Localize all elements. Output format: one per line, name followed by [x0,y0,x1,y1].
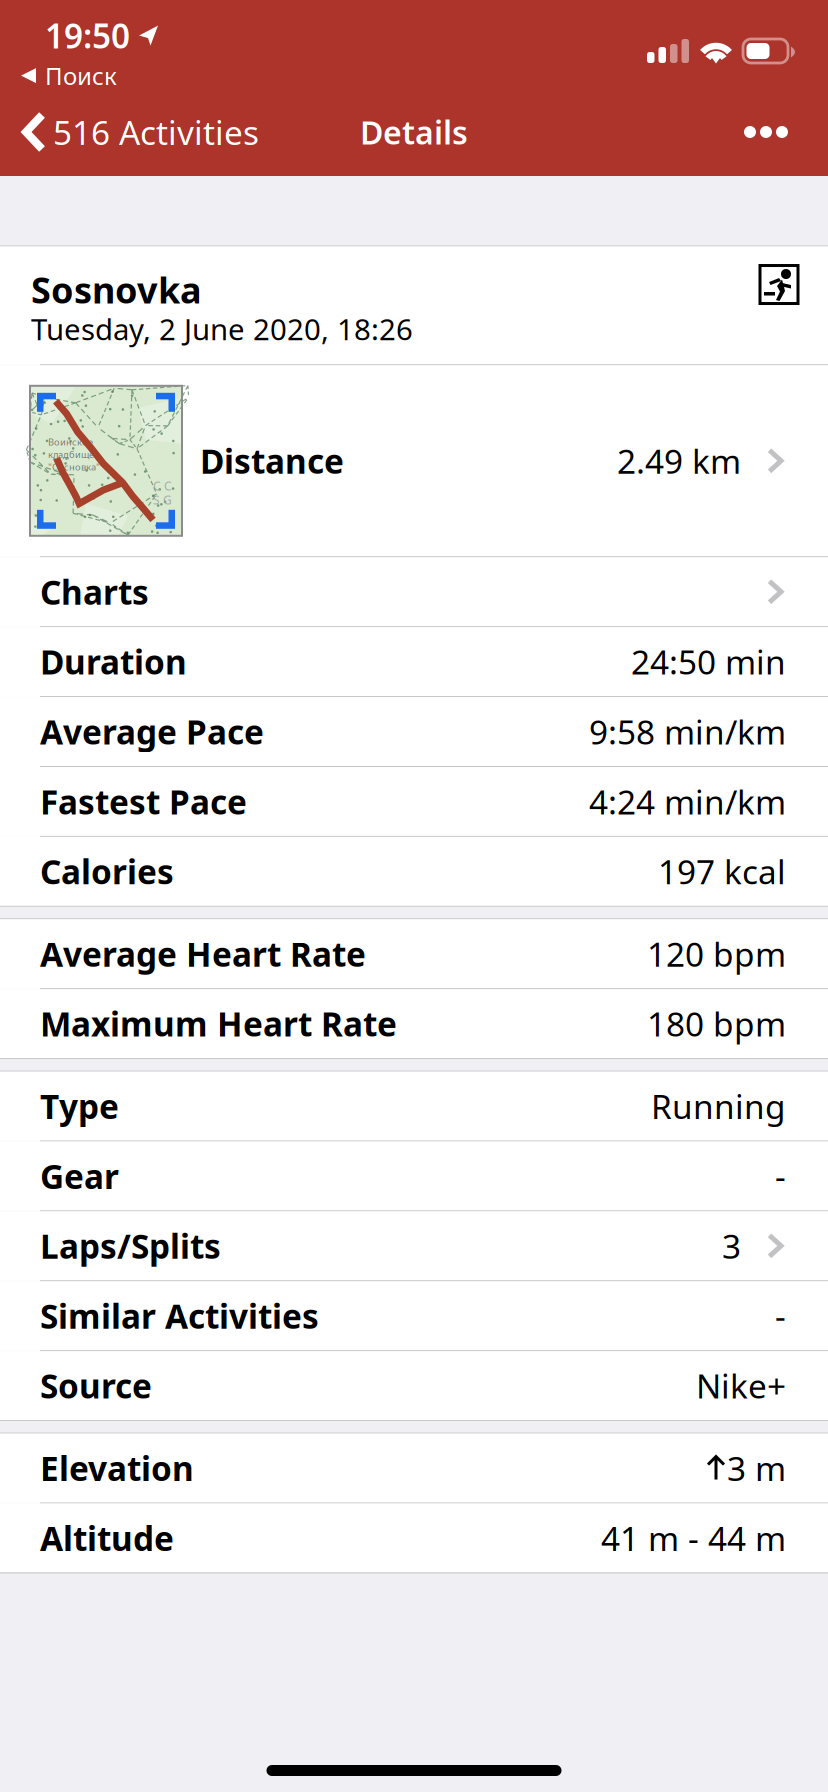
staticText: 516 Activities [53,110,259,154]
button[interactable]: Duration [0,627,828,696]
staticText: S G [153,492,172,508]
staticText: Altitude [40,1516,174,1560]
button[interactable]: Elevation [0,1434,828,1502]
button[interactable]: Average Heart Rate [0,919,828,988]
button[interactable]: Altitude [0,1503,828,1572]
staticText: 9:58 min/km [589,709,786,754]
staticText: Type [40,1084,119,1128]
staticText: 4:24 min/km [589,779,786,824]
button[interactable]: Fastest Pace [0,767,828,836]
staticText: Average Pace [40,709,264,754]
staticText: Duration [40,639,187,684]
staticText: Gear [40,1154,119,1198]
staticText: Average Heart Rate [40,932,366,976]
staticText: Details [360,111,468,153]
button[interactable]: More options [724,88,828,176]
staticText: 197 kcal [658,849,786,893]
button[interactable]: Average Pace [0,697,828,766]
staticText: 24:50 min [631,639,786,684]
button[interactable]: 516 Activities [0,88,273,176]
staticText: 120 bpm [647,932,786,976]
staticText: 180 bpm [647,1001,786,1046]
staticText: Sosnovka [31,265,202,313]
staticText: - [775,1154,786,1198]
staticText: Maximum Heart Rate [40,1001,397,1046]
staticText: Воинское [48,436,93,448]
button[interactable]: Charts [0,557,828,626]
button[interactable]: Calories [0,837,828,906]
button[interactable]: Type [0,1072,828,1140]
button[interactable]: Similar Activities [0,1281,828,1350]
staticText: Calories [40,849,174,893]
staticText: - [775,1294,786,1338]
staticText: Nike+ [696,1363,786,1408]
staticText: 41 m - 44 m [601,1516,786,1560]
staticText: Similar Activities [40,1294,319,1338]
staticText: 19:50 [45,13,130,58]
staticText: Поиск [45,60,117,92]
staticText: Laps/Splits [40,1224,221,1268]
button[interactable]: Gear [0,1141,828,1210]
staticText: Elevation [40,1446,194,1490]
staticText: Tuesday, 2 June 2020, 18:26 [31,309,413,348]
button[interactable]: Maximum Heart Rate [0,989,828,1058]
staticText: 3 m [727,1446,786,1490]
staticText: Charts [40,570,149,614]
button[interactable]: Поиск [21,58,117,92]
staticText: 3 [722,1224,741,1268]
staticText: Running [651,1084,786,1128]
button[interactable]: Воинское [0,365,828,556]
button[interactable]: Source [0,1351,828,1420]
staticText: 2.49 km [617,439,741,483]
staticText: Distance [200,439,344,483]
staticText: Source [40,1363,152,1408]
staticText: C C [153,478,172,494]
staticText: "Сосновка" [48,461,100,473]
staticText: кладбище [48,448,94,461]
button[interactable]: Laps/Splits [0,1211,828,1280]
staticText: Fastest Pace [40,779,247,824]
